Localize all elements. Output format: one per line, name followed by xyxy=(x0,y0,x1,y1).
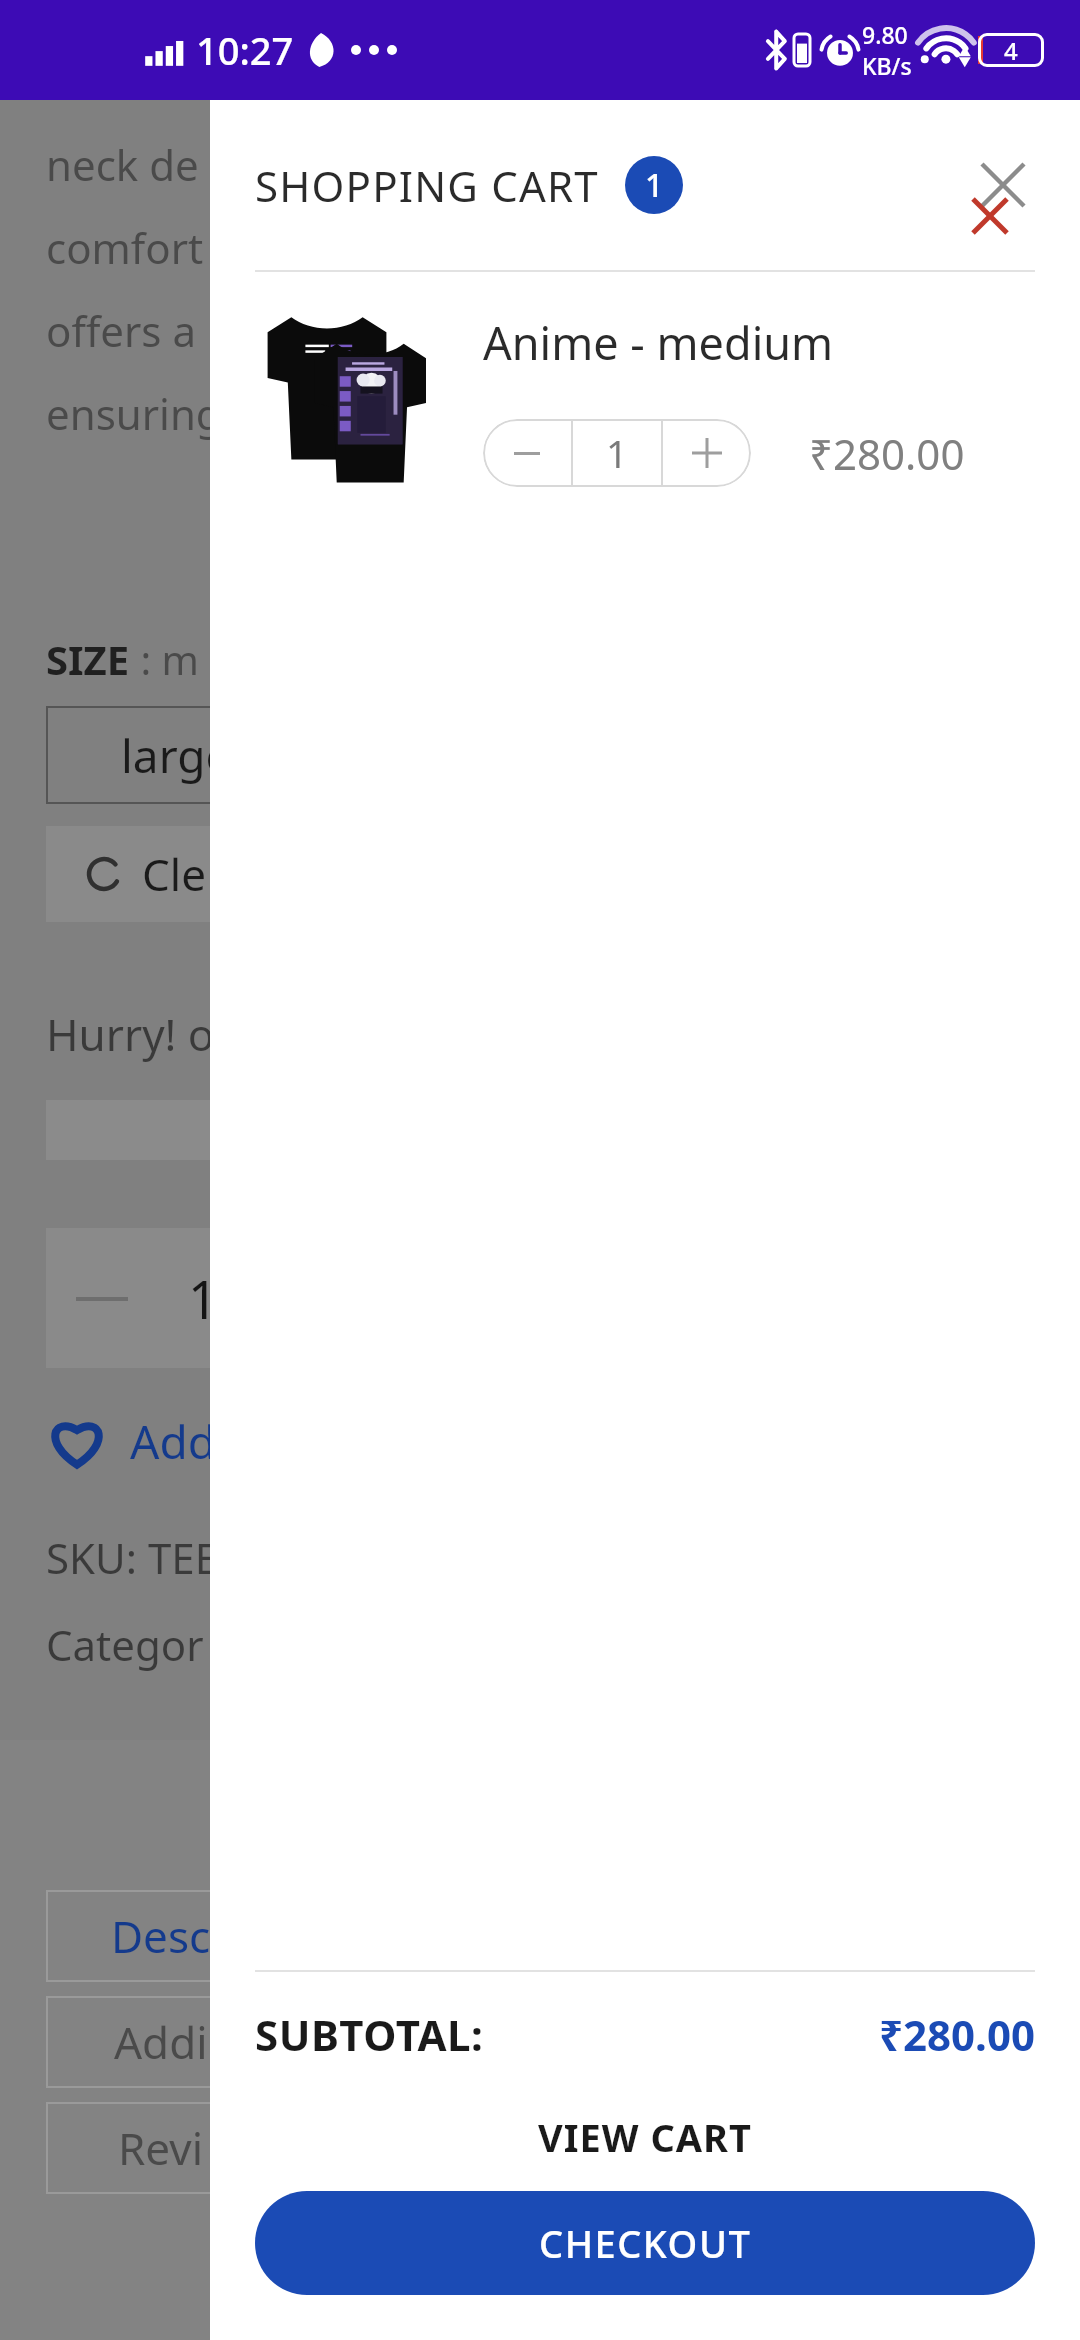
staticText: CHECKOUT xyxy=(539,2217,752,2269)
staticText: Anime - medium xyxy=(483,312,834,373)
staticText: comfort xyxy=(46,219,204,276)
staticText: 4 xyxy=(1004,34,1018,67)
button[interactable]: Close cart xyxy=(971,153,1035,217)
staticText: Revi xyxy=(118,2118,204,2178)
staticText: Desc xyxy=(111,1906,211,1966)
button[interactable]: Decrease quantity xyxy=(483,419,571,487)
staticText: ₹280.00 xyxy=(879,2006,1035,2063)
staticText: 1 xyxy=(645,163,664,207)
staticText: Categor xyxy=(46,1616,204,1673)
button[interactable]: 1 xyxy=(625,156,683,214)
staticText: 1 xyxy=(606,427,628,479)
staticText: neck de xyxy=(46,136,199,193)
staticText: KB/s xyxy=(862,50,912,81)
button[interactable]: 1 xyxy=(573,419,661,487)
staticText: Cle xyxy=(142,844,206,904)
button[interactable]: CHECKOUT xyxy=(255,2191,1035,2295)
staticText: 10:27 xyxy=(196,24,294,76)
staticText: Addi xyxy=(114,2012,208,2072)
staticText: : m xyxy=(130,632,199,686)
staticText: 1 xyxy=(188,1263,218,1334)
staticText: offers a xyxy=(46,302,196,359)
staticText: SHOPPING CART xyxy=(255,157,599,214)
staticText: 9.80 xyxy=(862,19,908,50)
button[interactable]: Increase quantity xyxy=(663,419,751,487)
staticText: ₹280.00 xyxy=(809,425,965,482)
staticText: Hurry! o xyxy=(46,1004,215,1064)
button[interactable] xyxy=(255,300,435,490)
staticText: large xyxy=(121,724,232,787)
staticText: SKU: TEE xyxy=(46,1529,218,1586)
button[interactable]: VIEW CART xyxy=(255,2099,1035,2175)
staticText: VIEW CART xyxy=(538,2111,752,2163)
staticText: SUBTOTAL: xyxy=(255,2006,484,2063)
staticText: Add xyxy=(130,1410,216,1473)
button[interactable]: Remove item xyxy=(962,188,1018,244)
staticText: SIZE xyxy=(46,632,130,686)
staticText: ensuring xyxy=(46,385,222,442)
